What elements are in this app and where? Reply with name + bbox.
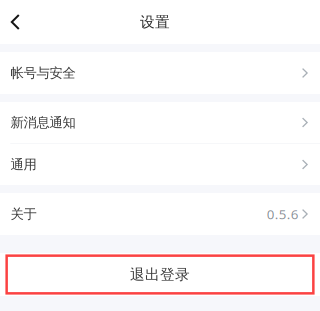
staticText: 设置 bbox=[140, 13, 170, 31]
button[interactable]: 关于 bbox=[0, 193, 320, 235]
staticText: 退出登录 bbox=[130, 265, 190, 283]
staticText: 帐号与安全 bbox=[10, 65, 75, 81]
button[interactable]: 新消息通知 bbox=[0, 102, 320, 143]
staticText: 0.5.6 bbox=[267, 205, 299, 223]
staticText: 通用 bbox=[10, 156, 36, 173]
staticText: 新消息通知 bbox=[10, 114, 75, 131]
button[interactable]: 退出登录 bbox=[0, 253, 320, 296]
button[interactable]: 帐号与安全 bbox=[0, 52, 320, 94]
staticText: 关于 bbox=[10, 206, 36, 222]
button[interactable]: 通用 bbox=[0, 144, 320, 185]
button[interactable]: 返回 bbox=[0, 0, 34, 44]
